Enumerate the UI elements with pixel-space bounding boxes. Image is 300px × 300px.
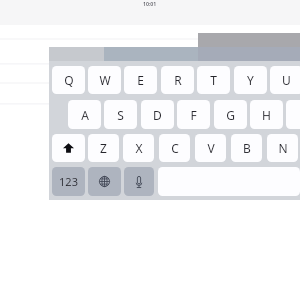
- staticText: R: [174, 72, 182, 88]
- staticText: S: [117, 107, 124, 123]
- button[interactable]: C: [159, 134, 190, 162]
- staticText: U: [282, 72, 291, 88]
- staticText: G: [226, 107, 235, 123]
- staticText: N: [278, 140, 288, 156]
- staticText: 10:01: [143, 0, 157, 7]
- button[interactable]: N: [267, 134, 298, 162]
- staticText: C: [171, 140, 179, 156]
- staticText: W: [99, 72, 111, 88]
- staticText: B: [243, 140, 251, 156]
- staticText: A: [81, 107, 89, 123]
- button[interactable]: Next keyboard: [88, 167, 121, 196]
- staticText: Z: [100, 140, 107, 156]
- button[interactable]: H: [250, 100, 283, 129]
- button[interactable]: B: [231, 134, 262, 162]
- button[interactable]: Y: [234, 66, 267, 94]
- button[interactable]: T: [197, 66, 230, 94]
- button[interactable]: F: [177, 100, 210, 129]
- button[interactable]: S: [104, 100, 137, 129]
- button[interactable]: R: [161, 66, 194, 94]
- button[interactable]: U: [270, 66, 300, 94]
- staticText: Y: [247, 72, 254, 88]
- button[interactable]: X: [123, 134, 154, 162]
- staticText: Q: [64, 72, 74, 88]
- button[interactable]: G: [214, 100, 247, 129]
- button[interactable]: Q: [52, 66, 85, 94]
- button[interactable]: Shift: [52, 134, 85, 162]
- button[interactable]: D: [141, 100, 174, 129]
- staticText: D: [153, 107, 162, 123]
- button[interactable]: V: [195, 134, 226, 162]
- button[interactable]: J: [286, 100, 300, 129]
- button[interactable]: Z: [88, 134, 119, 162]
- button[interactable]: A: [68, 100, 101, 129]
- staticText: X: [135, 140, 143, 156]
- staticText: F: [190, 107, 197, 123]
- staticText: V: [207, 140, 215, 156]
- staticText: E: [137, 72, 144, 88]
- staticText: T: [210, 72, 217, 88]
- button[interactable]: W: [88, 66, 121, 94]
- button[interactable]: 123: [52, 167, 85, 196]
- button[interactable]: Dictate: [124, 167, 154, 196]
- button[interactable]: E: [124, 66, 157, 94]
- staticText: 123: [59, 174, 78, 189]
- staticText: H: [262, 107, 271, 123]
